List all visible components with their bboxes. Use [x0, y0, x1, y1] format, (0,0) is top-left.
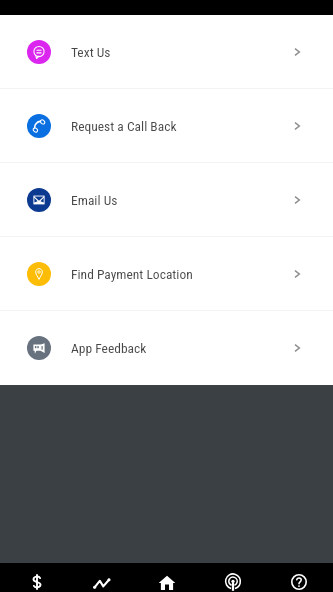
button[interactable]: App Feedback [0, 311, 333, 385]
staticText: App Feedback [71, 340, 147, 356]
button[interactable]: Locations [200, 563, 266, 592]
button[interactable]: Find Payment Location [0, 237, 333, 311]
staticText: Request a Call Back [71, 118, 177, 134]
button[interactable]: Payments [4, 563, 69, 592]
button[interactable]: Help [266, 563, 332, 592]
button[interactable]: Email Us [0, 163, 333, 237]
staticText: Find Payment Location [71, 266, 193, 282]
staticText: Email Us [71, 192, 118, 208]
button[interactable]: Text Us [0, 15, 333, 89]
button[interactable]: Home [134, 563, 200, 592]
button[interactable]: Request a Call Back [0, 89, 333, 163]
staticText: Text Us [71, 44, 111, 60]
button[interactable]: Activity [69, 563, 134, 592]
